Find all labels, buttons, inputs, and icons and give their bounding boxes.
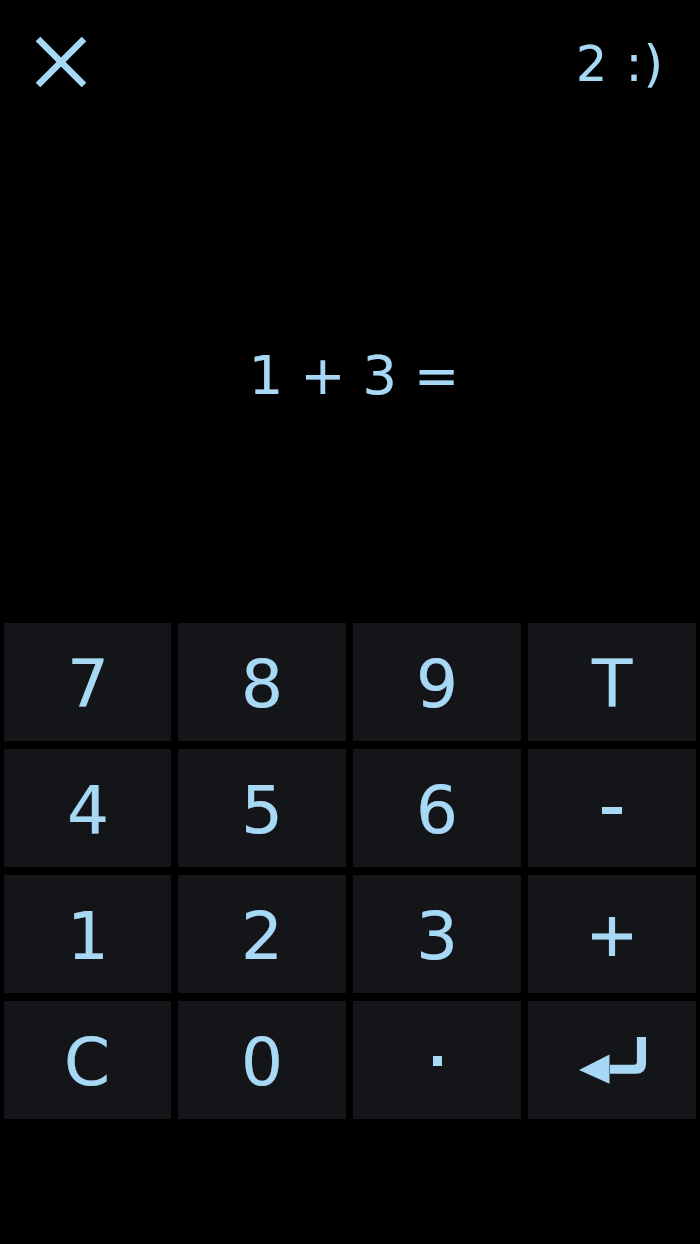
button[interactable] — [528, 749, 696, 867]
staticText: 1 — [67, 898, 109, 975]
button[interactable]: 1 — [4, 875, 171, 993]
staticText: 1 + 3 = — [4, 344, 700, 407]
staticText: 8 — [241, 646, 283, 723]
staticText: T — [592, 646, 633, 723]
button[interactable]: 6 — [353, 749, 521, 867]
staticText: C — [64, 1024, 111, 1101]
button[interactable] — [528, 875, 696, 993]
button[interactable]: 0 — [178, 1001, 346, 1119]
button[interactable]: 8 — [178, 623, 346, 741]
button[interactable]: 4 — [4, 749, 171, 867]
button[interactable] — [353, 1001, 521, 1119]
button[interactable]: 7 — [4, 623, 171, 741]
button[interactable]: C — [4, 1001, 171, 1119]
staticText: 3 — [416, 898, 458, 975]
button[interactable]: T — [528, 623, 696, 741]
staticText: 7 — [67, 646, 109, 723]
staticText: 0 — [241, 1024, 283, 1101]
staticText: 9 — [416, 646, 458, 723]
staticText: 5 — [241, 772, 283, 849]
staticText: 6 — [416, 772, 458, 849]
button[interactable] — [528, 1001, 696, 1119]
button[interactable] — [24, 25, 98, 99]
button[interactable]: 3 — [353, 875, 521, 993]
staticText: 2 :) — [576, 36, 665, 93]
button[interactable]: 2 — [178, 875, 346, 993]
button[interactable]: 9 — [353, 623, 521, 741]
staticText: 2 — [241, 898, 283, 975]
staticText: 4 — [67, 772, 109, 849]
button[interactable]: 5 — [178, 749, 346, 867]
